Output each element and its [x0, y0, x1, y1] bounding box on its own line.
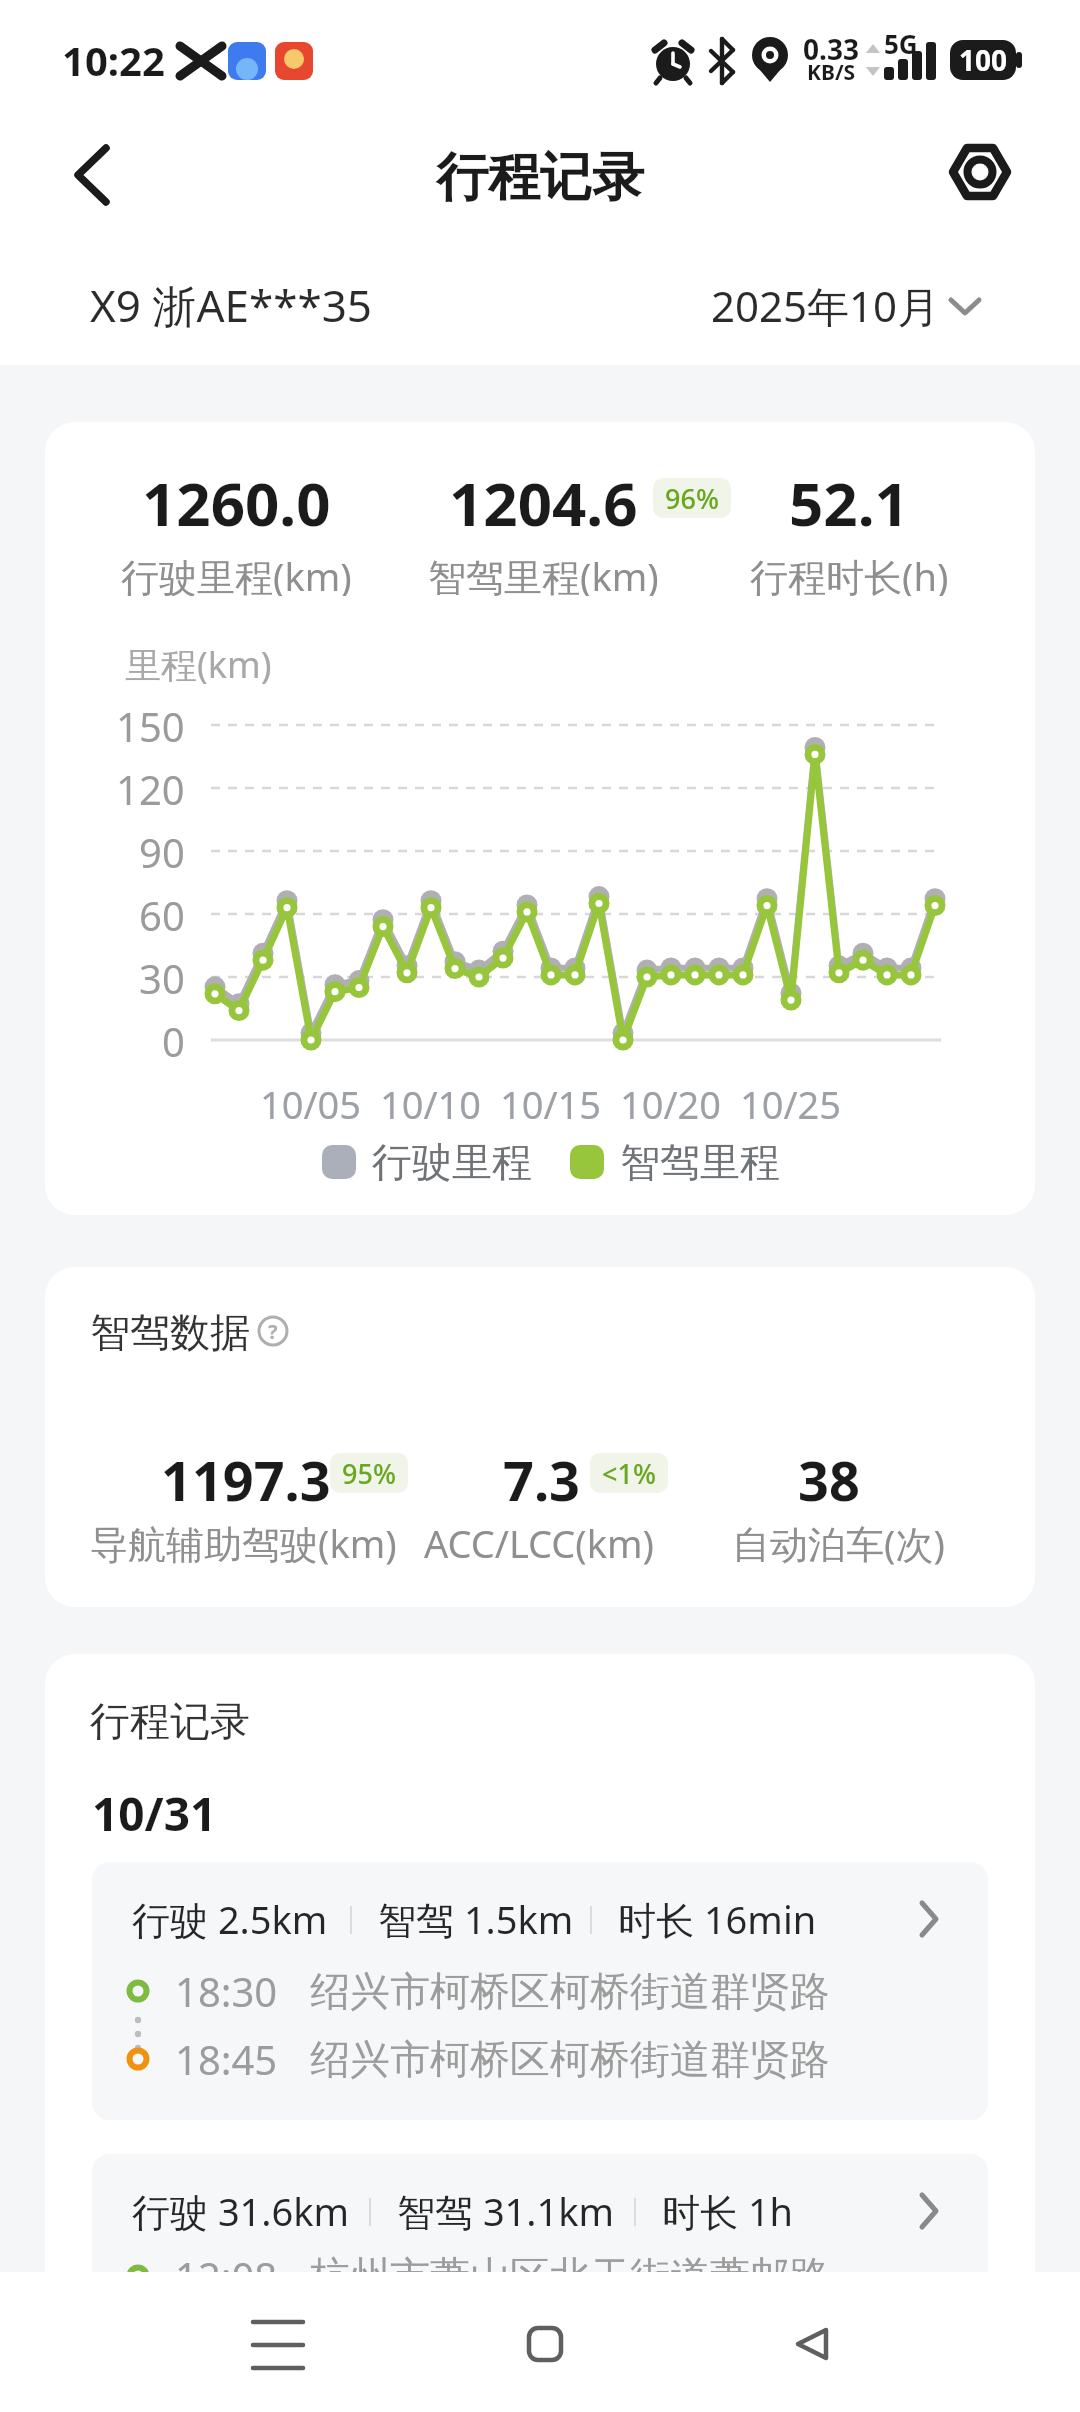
staticText: 10/05 [260, 1078, 362, 1122]
staticText: 120 [116, 762, 185, 814]
staticText: 2025年10月 [711, 277, 940, 334]
staticText: 绍兴市柯桥区柯桥街道群贤路 [310, 2034, 830, 2084]
staticText: X9 浙AE***35 [90, 275, 373, 335]
staticText: 智驾里程 [620, 1137, 780, 1187]
staticText: 导航辅助驾驶(km) [90, 1517, 397, 1565]
staticText: 智驾 31.1km [397, 2185, 615, 2237]
staticText: 30 [139, 951, 185, 1003]
staticText: 杭州市萧山区北干街道萧邮路 [310, 2251, 830, 2301]
staticText: 自动泊车(次) [732, 1517, 945, 1565]
staticText: 行驶里程(km) [121, 550, 352, 596]
staticText: 60 [139, 888, 185, 940]
staticText: 1260.0 [142, 462, 331, 528]
staticText: KB/S [807, 58, 856, 84]
staticText: 0.33 [803, 30, 859, 62]
staticText: 智驾 1.5km [378, 1893, 574, 1945]
staticText: 绍兴市柯桥区柯桥街道群贤路 [310, 1966, 830, 2016]
staticText: 150 [116, 699, 185, 751]
staticText: 10:22 [62, 33, 165, 87]
staticText: 智驾数据 [90, 1307, 250, 1355]
staticText: 行驶 2.5km [132, 1893, 328, 1945]
staticText: 智驾里程(km) [428, 550, 659, 596]
staticText: 18:45 [175, 2032, 278, 2086]
staticText: ? [268, 1318, 278, 1345]
staticText: 18:30 [175, 1964, 278, 2018]
staticText: 52.1 [789, 462, 909, 528]
staticText: 12:08 [175, 2249, 278, 2303]
staticText: 时长 16min [618, 1893, 817, 1945]
staticText: 里程(km) [125, 640, 272, 684]
staticText: 7.3 [503, 1443, 580, 1503]
staticText: ACC/LCC(km) [424, 1517, 654, 1565]
staticText: 行驶里程 [372, 1137, 532, 1187]
staticText: 10/20 [620, 1078, 722, 1122]
staticText: 10/25 [740, 1078, 842, 1122]
staticText: 1204.6 [449, 462, 638, 528]
staticText: 行程记录 [90, 1696, 250, 1744]
staticText: 38 [798, 1443, 860, 1503]
staticText: 10/31 [92, 1782, 217, 1840]
staticText: 行驶 31.6km [132, 2185, 350, 2237]
staticText: 0 [162, 1014, 185, 1066]
staticText: 行程记录 [436, 145, 644, 211]
staticText: <1% [602, 1455, 656, 1492]
staticText: 时长 1h [662, 2185, 794, 2237]
staticText: 96% [665, 480, 719, 517]
staticText: 行程时长(h) [750, 550, 949, 596]
staticText: 100 [959, 41, 1008, 79]
staticText: 10/10 [380, 1078, 482, 1122]
staticText: 1197.3 [161, 1443, 331, 1503]
staticText: 90 [139, 825, 185, 877]
staticText: 5G [884, 26, 918, 56]
staticText: 10/15 [500, 1078, 602, 1122]
staticText: 95% [342, 1455, 396, 1492]
